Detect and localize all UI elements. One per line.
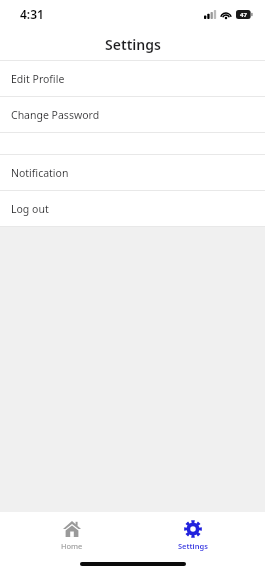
staticText: Change Password <box>11 108 100 122</box>
button[interactable]: Change Password <box>0 97 265 132</box>
button[interactable]: Settings <box>143 518 243 553</box>
staticText: 4:31 <box>20 6 44 22</box>
staticText: Settings <box>178 541 208 551</box>
staticText: 47 <box>240 11 247 19</box>
button[interactable]: Home <box>22 518 122 553</box>
button[interactable]: Log out <box>0 191 265 226</box>
staticText: Home <box>61 541 83 551</box>
staticText: Edit Profile <box>11 72 65 86</box>
staticText: Notification <box>11 166 69 180</box>
button[interactable]: Edit Profile <box>0 61 265 96</box>
staticText: Settings <box>105 35 161 54</box>
button[interactable]: Notification <box>0 155 265 190</box>
staticText: Log out <box>11 202 49 216</box>
